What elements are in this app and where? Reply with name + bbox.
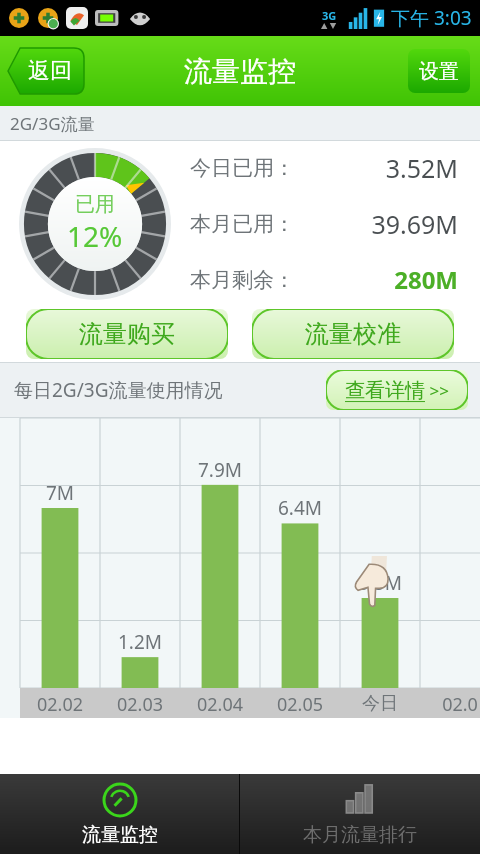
staticText: 本月剩余： <box>190 267 295 293</box>
button[interactable]: 流量监控 <box>0 774 239 854</box>
button[interactable]: 本月流量排行 <box>240 774 480 854</box>
staticText: 3.52M <box>295 151 458 185</box>
button[interactable]: 设置 <box>408 49 470 93</box>
staticText: 流量校准 <box>305 319 401 349</box>
staticText: 3G <box>322 8 337 23</box>
other: 本月流量排行 <box>342 782 378 818</box>
staticText: 返回 <box>28 57 72 85</box>
button[interactable]: 流量购买 <box>26 309 228 359</box>
staticText: >> <box>425 379 449 402</box>
staticText: 下午 3:03 <box>391 5 472 31</box>
staticText: 02.0 <box>420 692 480 717</box>
staticText: 本月流量排行 <box>303 823 417 847</box>
staticText: 02.05 <box>260 692 340 717</box>
staticText: 本月已用： <box>190 211 295 237</box>
staticText: 查看详情 <box>345 378 425 403</box>
staticText: 39.69M <box>295 207 458 241</box>
button[interactable]: 返回 <box>8 48 84 94</box>
staticText: 02.03 <box>100 692 180 717</box>
staticText: 流量购买 <box>79 319 175 349</box>
staticText: 今日 <box>340 692 420 715</box>
staticText: 280M <box>295 263 458 296</box>
staticText: 流量监控 <box>184 54 296 89</box>
staticText: 3.5M <box>340 570 420 596</box>
staticText: 每日2G/3G流量使用情况 <box>14 377 223 403</box>
staticText: 7.9M <box>180 457 260 483</box>
staticText: 已用 <box>75 192 115 217</box>
staticText: 7M <box>20 480 100 506</box>
staticText: 12% <box>67 217 123 255</box>
staticText: 2G/3G流量 <box>10 112 95 135</box>
other: 流量监控 <box>102 782 138 818</box>
button[interactable]: 查看详情 <box>326 370 468 410</box>
staticText: 6.4M <box>260 495 340 521</box>
staticText: 流量监控 <box>82 823 158 847</box>
staticText: 02.04 <box>180 692 260 717</box>
button[interactable]: 流量校准 <box>252 309 454 359</box>
staticText: 1.2M <box>100 629 180 655</box>
staticText: 02.02 <box>20 692 100 717</box>
staticText: 设置 <box>419 59 459 84</box>
staticText: 今日已用： <box>190 155 295 181</box>
